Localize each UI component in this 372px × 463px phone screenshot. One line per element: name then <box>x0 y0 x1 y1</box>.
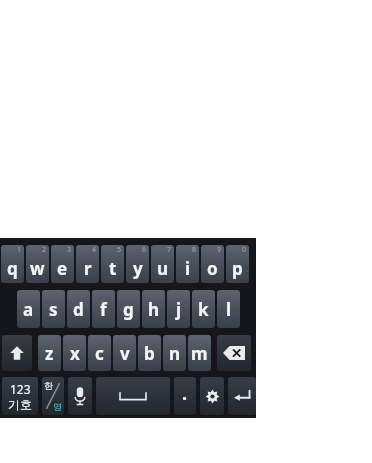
button[interactable]: m <box>188 335 211 371</box>
button[interactable]: b <box>138 335 161 371</box>
staticText: 4 <box>92 245 97 255</box>
button[interactable]: 3 <box>51 245 74 283</box>
staticText: v <box>120 342 130 365</box>
button[interactable]: d <box>67 290 90 328</box>
staticText: n <box>169 342 181 365</box>
button[interactable]: Korean English toggle <box>42 377 64 415</box>
button[interactable]: x <box>63 335 86 371</box>
button[interactable]: 7 <box>151 245 174 283</box>
button[interactable]: 9 <box>201 245 224 283</box>
staticText: q <box>7 257 18 280</box>
staticText: p <box>232 257 243 280</box>
button[interactable]: Space <box>96 377 170 415</box>
staticText: y <box>133 257 143 280</box>
button[interactable]: j <box>167 290 190 328</box>
staticText: s <box>49 298 58 321</box>
staticText: 123 <box>10 381 31 397</box>
staticText: r <box>84 257 92 280</box>
staticText: 8 <box>192 245 197 255</box>
button[interactable]: Settings <box>200 377 224 415</box>
staticText: 한 <box>44 380 53 391</box>
staticText: w <box>30 257 45 280</box>
button[interactable]: l <box>217 290 240 328</box>
staticText: 영 <box>53 401 62 412</box>
staticText: i <box>185 257 191 280</box>
staticText: x <box>70 342 80 365</box>
button[interactable]: z <box>38 335 61 371</box>
button[interactable]: Backspace <box>217 335 251 371</box>
staticText: . <box>182 381 188 406</box>
button[interactable]: 2 <box>26 245 49 283</box>
staticText: a <box>23 298 34 321</box>
staticText: e <box>57 257 68 280</box>
button[interactable]: 0 <box>226 245 249 283</box>
button[interactable]: f <box>92 290 115 328</box>
staticText: 0 <box>242 245 247 255</box>
staticText: 6 <box>142 245 147 255</box>
button[interactable]: 123 <box>2 377 38 415</box>
button[interactable]: . <box>174 377 196 415</box>
button[interactable]: h <box>142 290 165 328</box>
staticText: 3 <box>67 245 72 255</box>
staticText: 9 <box>217 245 222 255</box>
staticText: 5 <box>117 245 122 255</box>
button[interactable]: g <box>117 290 140 328</box>
staticText: 2 <box>42 245 47 255</box>
staticText: 7 <box>167 245 172 255</box>
staticText: j <box>176 298 182 321</box>
button[interactable]: c <box>88 335 111 371</box>
staticText: u <box>157 257 169 280</box>
staticText: g <box>123 298 134 321</box>
button[interactable]: s <box>42 290 65 328</box>
staticText: 기호 <box>8 397 32 412</box>
button[interactable]: 8 <box>176 245 199 283</box>
button[interactable]: Voice input <box>68 377 92 415</box>
staticText: b <box>144 342 155 365</box>
staticText: h <box>148 298 160 321</box>
staticText: d <box>73 298 84 321</box>
staticText: 1 <box>17 245 22 255</box>
button[interactable]: Enter <box>228 377 256 415</box>
staticText: o <box>207 257 218 280</box>
button[interactable]: 6 <box>126 245 149 283</box>
staticText: k <box>198 298 209 321</box>
staticText: c <box>95 342 104 365</box>
staticText: l <box>226 298 232 321</box>
button[interactable]: a <box>17 290 40 328</box>
button[interactable]: 4 <box>76 245 99 283</box>
staticText: m <box>191 342 208 365</box>
button[interactable]: k <box>192 290 215 328</box>
button[interactable]: Shift <box>2 335 32 371</box>
button[interactable]: n <box>163 335 186 371</box>
staticText: f <box>100 298 107 321</box>
staticText: t <box>109 257 117 280</box>
staticText: z <box>45 342 54 365</box>
button[interactable]: v <box>113 335 136 371</box>
button[interactable]: 5 <box>101 245 124 283</box>
button[interactable]: 1 <box>1 245 24 283</box>
